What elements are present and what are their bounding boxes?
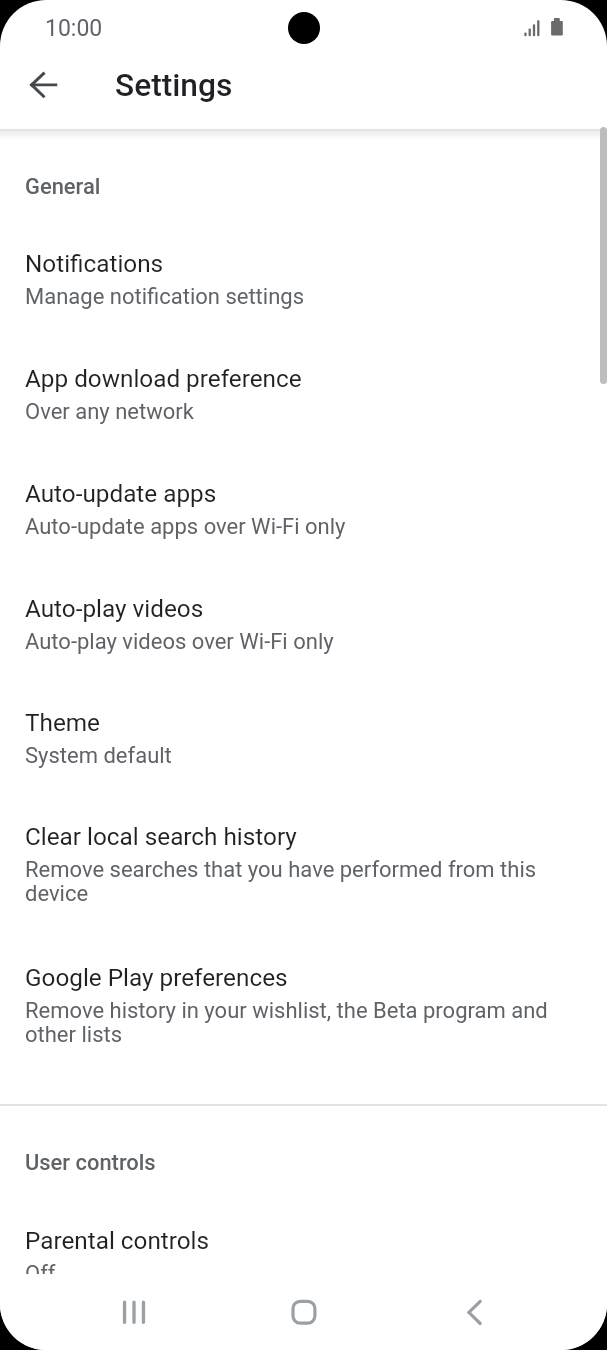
staticText: Notifications — [25, 249, 164, 277]
staticText: Theme — [25, 708, 100, 736]
staticText: Remove searches that you have performed … — [25, 857, 575, 907]
staticText: Settings — [115, 67, 233, 104]
staticText: 10:00 — [45, 15, 103, 42]
staticText: Google Play preferences — [25, 963, 288, 991]
button[interactable]: Back — [438, 1276, 510, 1348]
button[interactable]: Theme — [0, 708, 607, 769]
staticText: Clear local search history — [25, 822, 297, 850]
button[interactable]: Home — [268, 1276, 340, 1348]
staticText: User controls — [25, 1150, 156, 1176]
button[interactable]: Recent apps — [98, 1276, 170, 1348]
button[interactable]: App download preference — [0, 364, 607, 425]
button[interactable]: Auto-update apps — [0, 479, 607, 540]
staticText: App download preference — [25, 364, 302, 392]
staticText: Auto-play videos over Wi-Fi only — [25, 629, 334, 655]
staticText: General — [25, 174, 101, 200]
staticText: Auto-update apps — [25, 479, 217, 507]
button[interactable]: Clear local search history — [0, 822, 607, 907]
button[interactable]: Auto-play videos — [0, 594, 607, 655]
button[interactable]: Back — [20, 61, 68, 109]
staticText: Manage notification settings — [25, 284, 305, 310]
staticText: Auto-play videos — [25, 594, 204, 622]
staticText: Over any network — [25, 399, 194, 425]
button[interactable]: Google Play preferences — [0, 963, 607, 1048]
staticText: Parental controls — [25, 1226, 210, 1254]
staticText: System default — [25, 743, 172, 769]
staticText: Remove history in your wishlist, the Bet… — [25, 998, 575, 1048]
button[interactable]: Notifications — [0, 249, 607, 310]
staticText: Auto-update apps over Wi-Fi only — [25, 514, 346, 540]
staticText: Off — [25, 1261, 56, 1287]
button[interactable]: Parental controls — [0, 1226, 607, 1287]
